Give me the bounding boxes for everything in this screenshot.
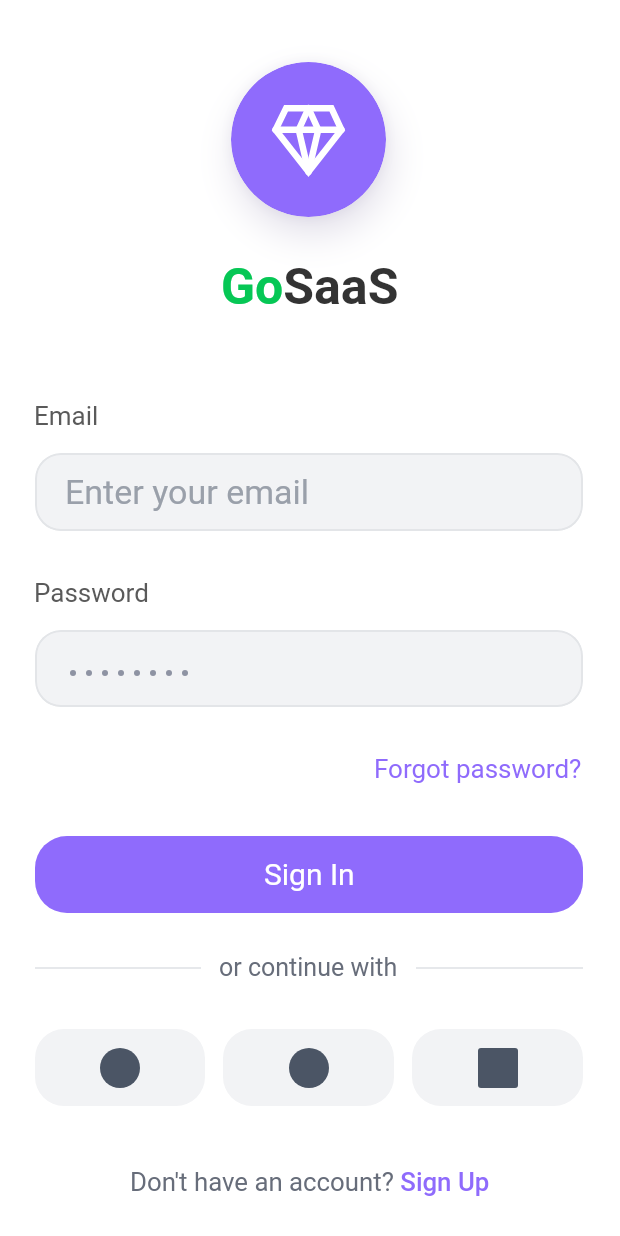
staticText: Sign In bbox=[264, 857, 355, 892]
button[interactable]: Forgot password? bbox=[374, 754, 582, 784]
staticText: Password bbox=[34, 578, 149, 608]
button[interactable]: Sign In bbox=[35, 836, 583, 913]
button[interactable]: Enter your email bbox=[35, 453, 583, 531]
staticText: GoSaaS bbox=[221, 258, 399, 317]
staticText: Enter your email bbox=[65, 472, 310, 512]
staticText: Email bbox=[34, 401, 99, 431]
button[interactable]: Don't have an account? Sign Up bbox=[130, 1167, 490, 1197]
button[interactable]: Sign in with Google bbox=[35, 1029, 205, 1106]
button[interactable]: Sign in with Facebook bbox=[223, 1029, 394, 1106]
staticText: or continue with bbox=[219, 953, 398, 982]
button[interactable]: Sign in with Apple bbox=[412, 1029, 583, 1106]
button[interactable] bbox=[35, 630, 583, 707]
